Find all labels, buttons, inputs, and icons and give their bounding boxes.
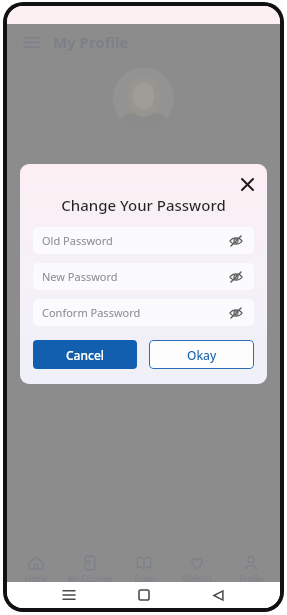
staticText: Profile [239,573,264,582]
button[interactable]: My Courses [65,552,115,582]
staticText: Logout [23,244,70,263]
button[interactable]: Recent apps [56,582,82,608]
button[interactable]: Home [11,552,61,582]
button[interactable]: Cancel [33,340,137,369]
button[interactable]: Profile [226,552,276,582]
button[interactable]: Conform Password [33,299,254,326]
button[interactable]: Back [205,582,231,608]
button[interactable]: Menu [21,32,41,52]
button[interactable]: New Password [33,263,254,290]
button[interactable]: Home [131,582,157,608]
staticText: Cancel [66,347,105,363]
button[interactable]: Profile photo [113,68,174,129]
staticText: Exam [134,573,155,582]
staticText: Okay [187,347,217,363]
button[interactable]: Show password [227,232,245,250]
button[interactable]: Show password [227,268,245,286]
staticText: New Password [42,269,118,284]
staticText: My Profile [53,32,129,52]
button[interactable]: Okay [149,340,254,369]
button[interactable]: Wishlist [172,552,222,582]
staticText: Old Password [42,233,113,248]
staticText: Change Your Password [20,195,267,215]
button[interactable]: Logout [7,238,280,268]
button[interactable]: Close [236,173,258,195]
staticText: Wishlist [182,573,212,582]
button[interactable]: Exam [119,552,169,582]
staticText: Conform Password [42,305,141,320]
staticText: My Courses [68,573,112,582]
button[interactable]: Old Password [33,227,254,254]
staticText: Home [25,573,48,582]
button[interactable]: Show password [227,304,245,322]
